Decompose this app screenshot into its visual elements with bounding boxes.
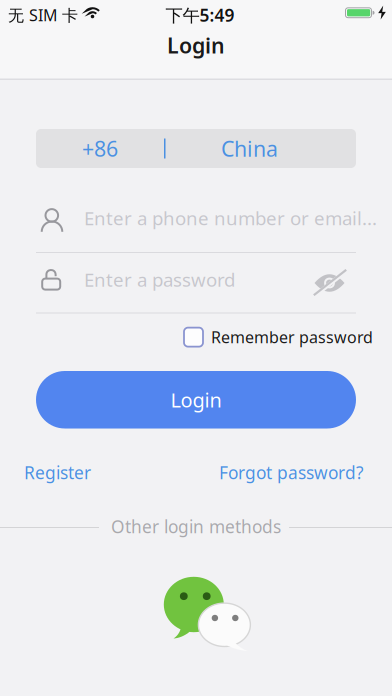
staticText: Login bbox=[170, 386, 221, 413]
staticText: Forgot password? bbox=[219, 461, 364, 484]
button[interactable]: Forgot password? bbox=[219, 461, 364, 484]
staticText: Other login methods bbox=[111, 515, 281, 538]
button[interactable]: Log in with WeChat bbox=[0, 0, 392, 696]
staticText: Enter a phone number or email... bbox=[84, 205, 377, 230]
button[interactable]: Show password bbox=[0, 0, 392, 696]
staticText: +86 bbox=[82, 134, 118, 163]
staticText: Enter a password bbox=[84, 267, 235, 292]
staticText: 下午5:49 bbox=[165, 3, 234, 26]
staticText: 无 SIM 卡 bbox=[8, 4, 78, 26]
staticText: Login bbox=[167, 31, 225, 59]
button[interactable]: Register bbox=[24, 461, 91, 484]
button[interactable]: Remember password bbox=[184, 326, 373, 348]
staticText: China bbox=[221, 134, 278, 163]
button[interactable]: Login bbox=[36, 371, 356, 428]
staticText: Register bbox=[24, 461, 91, 484]
staticText: Remember password bbox=[211, 326, 373, 348]
button[interactable]: +86 bbox=[36, 129, 356, 168]
